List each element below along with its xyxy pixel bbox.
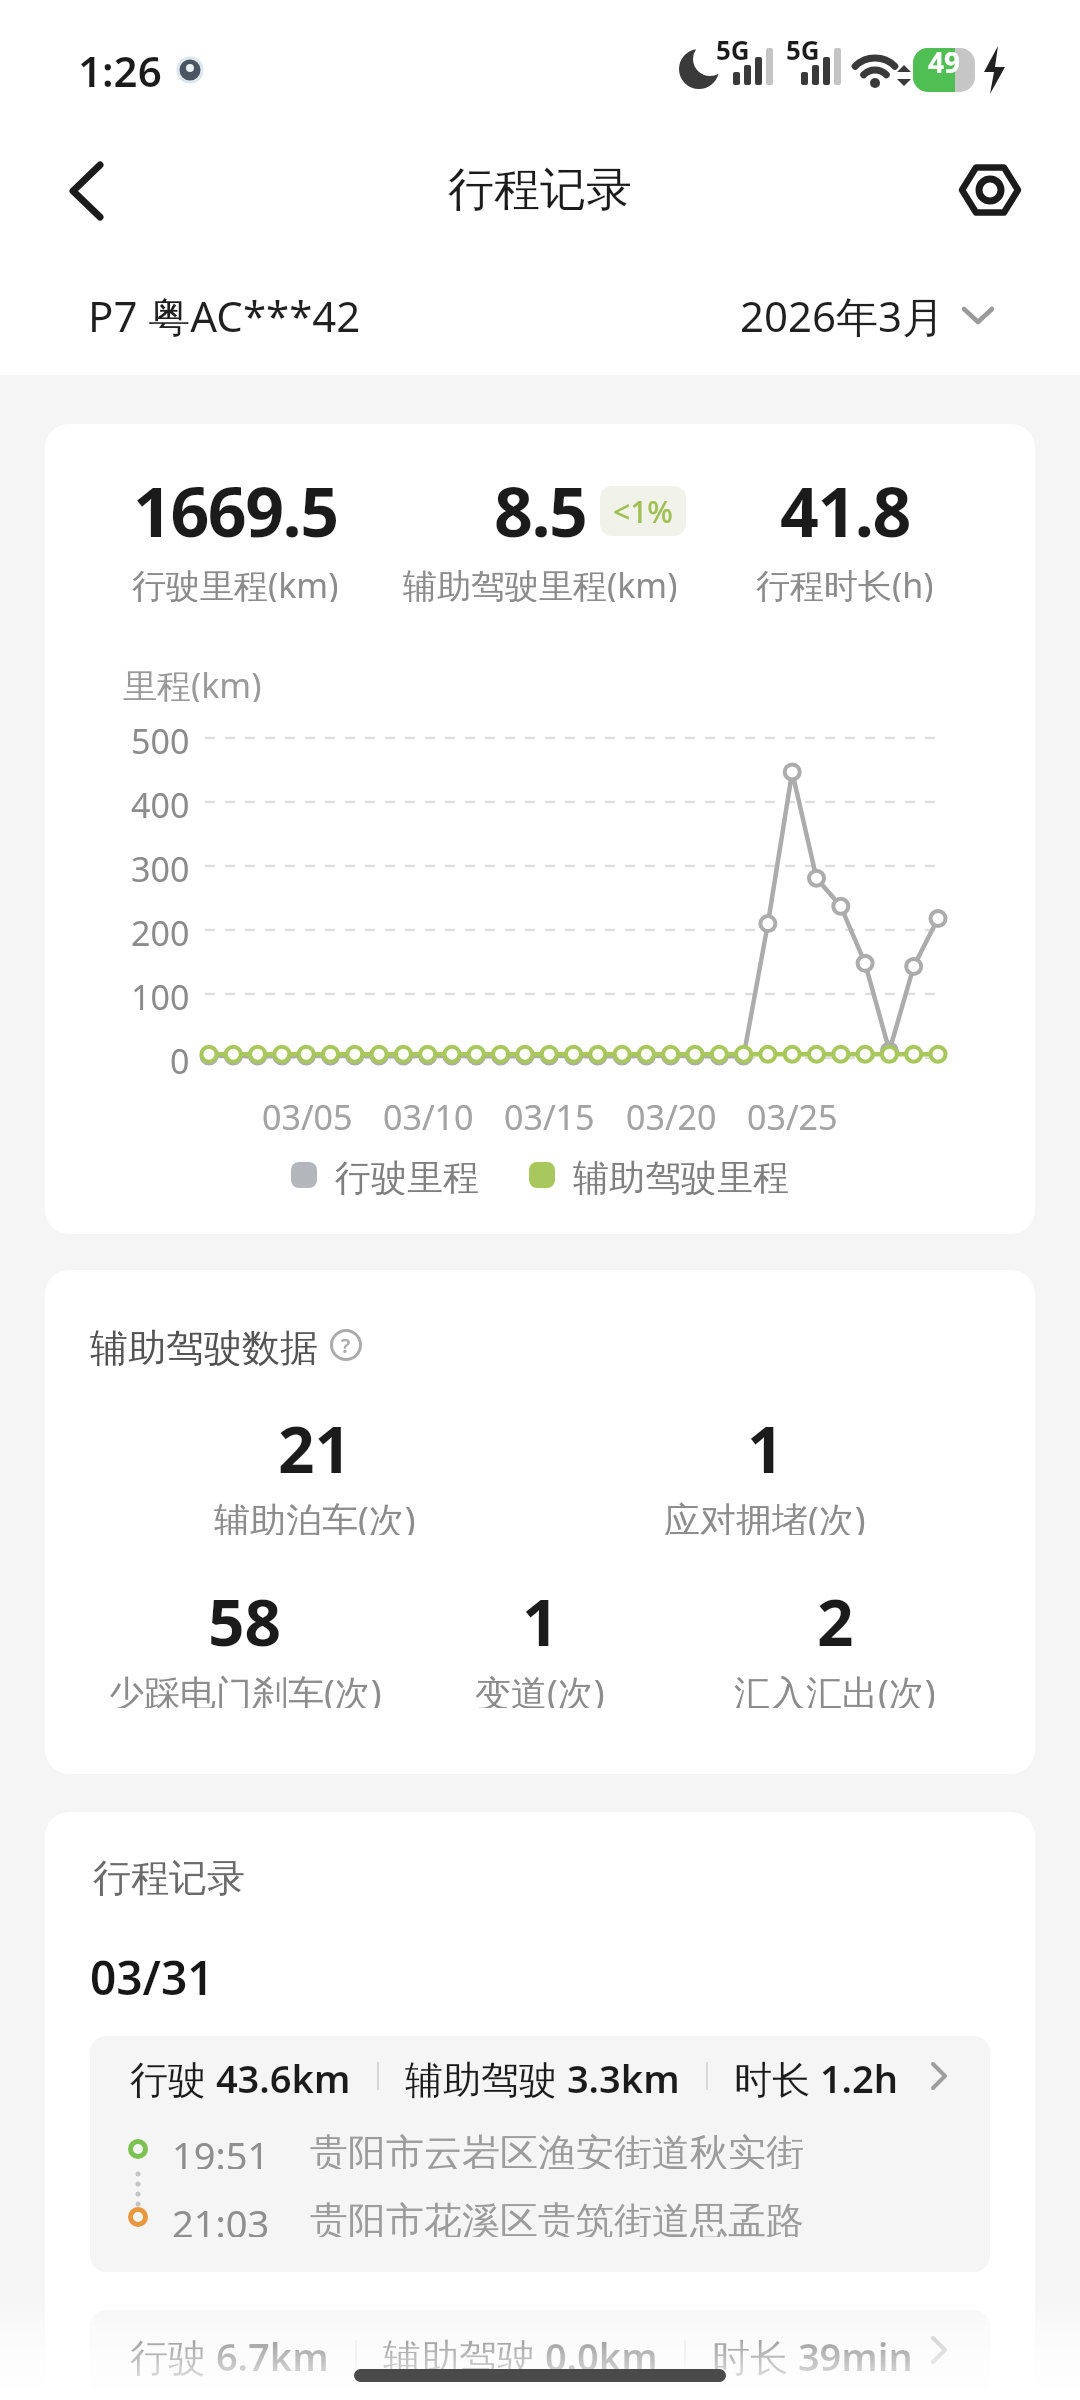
button[interactable]: P7 粤AC***42 [0,285,1080,345]
staticText: 1 [522,1578,559,1658]
staticText: 辅助驾驶数据 [90,1324,318,1366]
staticText: 200 [131,910,190,950]
staticText: 行程记录 [93,1854,245,1896]
staticText: 400 [131,782,190,822]
staticText: 行驶里程 [335,1155,479,1195]
staticText: <1% [613,491,673,532]
staticText: 500 [131,718,190,758]
staticText: 少踩电门刹车(次) [108,1668,382,1708]
staticText: 辅助驾驶 0.0km [383,2330,658,2378]
staticText: 49 [928,43,961,81]
staticText: 1669.5 [133,464,338,550]
staticText: 5G [786,32,820,62]
staticText: 21:03 [172,2197,270,2237]
button[interactable] [950,150,1030,230]
button[interactable]: 行驶 6.7km [90,2310,990,2400]
staticText: 辅助泊车(次) [214,1495,416,1535]
staticText: 100 [131,974,190,1014]
staticText: 变道(次) [475,1668,605,1708]
staticText: 19:51 [172,2129,270,2169]
staticText: 行驶 43.6km [130,2052,351,2100]
staticText: 03/05 [262,1094,353,1134]
staticText: 行驶 6.7km [130,2330,329,2378]
staticText: ? [341,1332,351,1359]
staticText: 03/20 [626,1094,717,1134]
staticText: 里程(km) [123,662,262,702]
staticText: 41.8 [780,464,910,550]
staticText: 2026年3月 [740,287,945,344]
staticText: 03/25 [747,1094,838,1134]
staticText: 1 [747,1405,784,1485]
button[interactable] [50,150,130,230]
staticText: 时长 39min [712,2330,913,2378]
staticText: 行驶里程(km) [132,562,339,602]
staticText: 贵阳市花溪区贵筑街道思孟路 [310,2197,804,2237]
staticText: 03/31 [90,1946,214,1998]
staticText: 5G [716,32,750,62]
staticText: 58 [208,1578,282,1658]
staticText: 300 [131,846,190,886]
staticText: 1:26 [78,42,162,96]
staticText: P7 粤AC***42 [88,287,361,344]
button[interactable]: 2026年3月 [720,285,1000,345]
staticText: 辅助驾驶里程(km) [403,562,678,602]
staticText: 21 [278,1405,352,1485]
staticText: 0 [170,1038,190,1078]
staticText: 辅助驾驶里程 [573,1155,789,1195]
staticText: 03/10 [383,1094,474,1134]
staticText: 辅助驾驶 3.3km [405,2052,680,2100]
staticText: 贵阳市云岩区渔安街道秋实街 [310,2129,804,2169]
button[interactable]: 行驶 43.6km [90,2036,990,2272]
staticText: 03/15 [504,1094,595,1134]
staticText: 应对拥堵(次) [664,1495,866,1535]
staticText: 2 [817,1578,854,1658]
staticText: 汇入汇出(次) [734,1668,936,1708]
staticText: 行程记录 [448,161,632,219]
staticText: 行程时长(h) [756,562,934,602]
staticText: 8.5 [494,464,587,550]
staticText: 时长 1.2h [734,2052,899,2100]
